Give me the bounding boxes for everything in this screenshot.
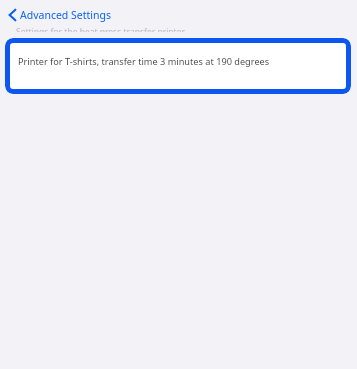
staticText: Settings for the heat press transfer pri… bbox=[16, 26, 185, 32]
button[interactable]: Printer for T-shirts, transfer time 3 mi… bbox=[5, 38, 351, 94]
staticText: Advanced Settings bbox=[20, 8, 111, 22]
button[interactable]: Back to Advanced Settings bbox=[7, 7, 112, 23]
staticText: Printer for T-shirts, transfer time 3 mi… bbox=[18, 55, 270, 68]
